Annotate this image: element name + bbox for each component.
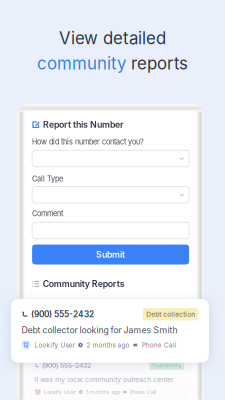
staticText: community — [37, 53, 126, 74]
staticText: Lookify User — [44, 389, 76, 395]
staticText: (900) 555-2432 — [42, 361, 91, 369]
staticText: Submit — [96, 249, 125, 260]
staticText: Report this Number — [43, 119, 123, 130]
staticText: Community Reports — [43, 278, 125, 289]
staticText: Phone Call — [130, 389, 156, 395]
staticText: Debt collection — [146, 310, 195, 318]
staticText: Trustworthy — [151, 362, 181, 369]
staticText: It was my local community outreach cente… — [34, 375, 174, 384]
staticText: 2 months ago — [87, 341, 130, 349]
staticText: Phone Call — [142, 341, 177, 349]
button[interactable]: Submit — [32, 244, 189, 264]
staticText: reports — [126, 53, 188, 74]
staticText: Lookify User — [34, 341, 74, 349]
staticText: 12 — [35, 389, 40, 395]
staticText: Call Type — [32, 174, 63, 183]
staticText: Debt collector looking for James Smith — [21, 325, 177, 335]
staticText: 3 months ago — [85, 389, 120, 395]
staticText: How did this number contact you? — [32, 137, 144, 146]
button[interactable]: (900) 555-2432 — [11, 299, 209, 363]
staticText: View detailed — [59, 28, 166, 48]
staticText: 12 — [23, 342, 29, 348]
staticText: (900) 555-2432 — [31, 309, 94, 319]
staticText: Comment — [32, 209, 63, 218]
